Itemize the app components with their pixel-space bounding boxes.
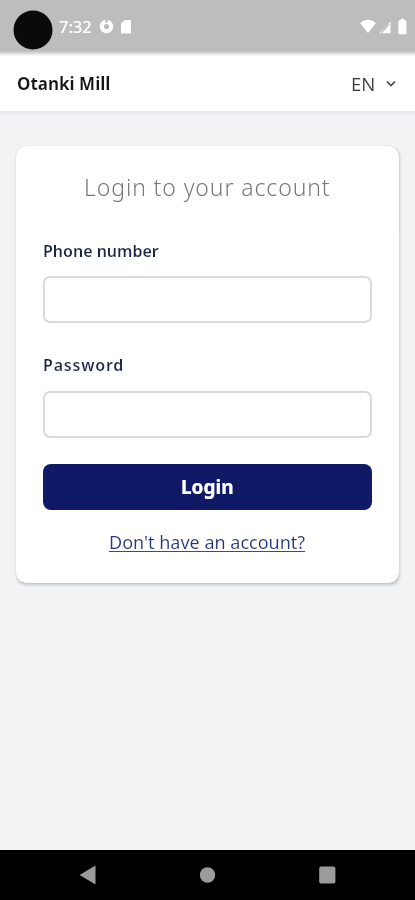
staticText: 7:32 xyxy=(59,15,92,37)
button[interactable] xyxy=(0,850,139,900)
button[interactable]: Don't have an account? xyxy=(109,530,306,555)
button[interactable] xyxy=(277,850,415,900)
staticText: Phone number xyxy=(43,240,159,262)
button[interactable] xyxy=(139,850,277,900)
staticText: EN xyxy=(351,71,376,96)
staticText: Login to your account xyxy=(84,171,331,202)
staticText: Otanki Mill xyxy=(17,72,111,95)
button[interactable]: EN xyxy=(351,71,395,96)
staticText: Don't have an account? xyxy=(109,530,306,555)
button[interactable]: Login xyxy=(43,464,372,510)
staticText: Password xyxy=(43,354,125,376)
staticText: Login xyxy=(181,474,234,500)
